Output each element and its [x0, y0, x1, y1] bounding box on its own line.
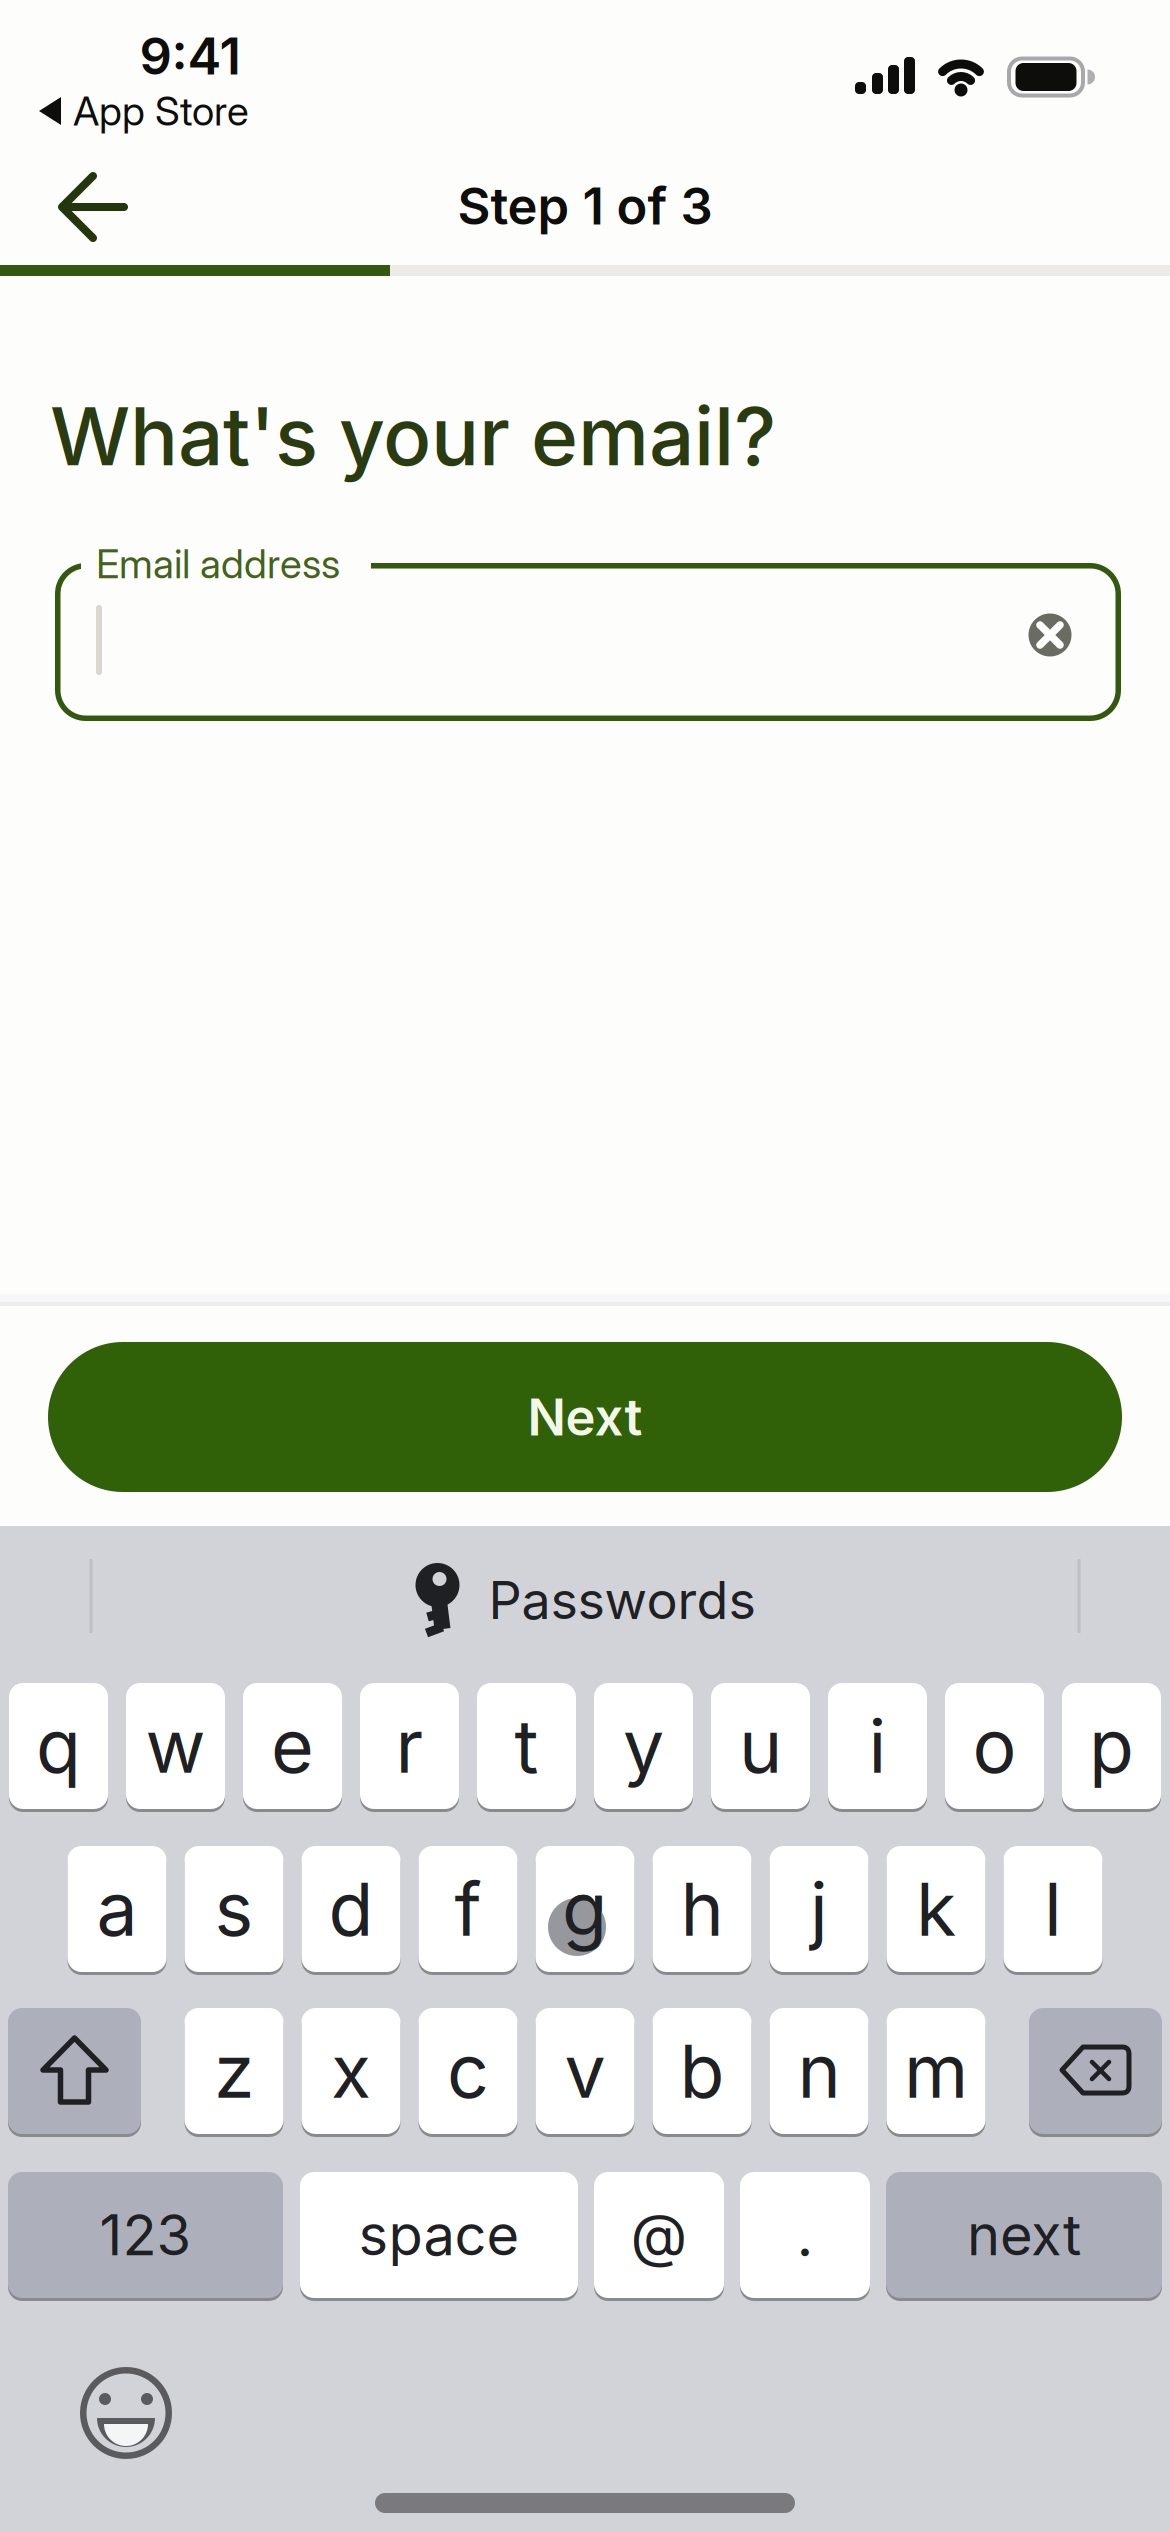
button[interactable]: o [945, 1683, 1044, 1809]
staticText: App Store [73, 87, 249, 135]
button[interactable]: x [301, 2008, 400, 2134]
button[interactable]: a [67, 1846, 166, 1972]
button[interactable]: Delete [1029, 2008, 1162, 2134]
button[interactable]: c [418, 2008, 517, 2134]
button[interactable]: 123 [8, 2172, 283, 2298]
staticText: j [810, 1866, 828, 1952]
staticText: r [395, 1703, 423, 1789]
staticText: next [967, 2202, 1081, 2268]
staticText: f [454, 1866, 481, 1952]
button[interactable]: space [300, 2172, 578, 2298]
staticText: p [1089, 1703, 1134, 1789]
button[interactable]: s [184, 1846, 283, 1972]
button[interactable]: m [886, 2008, 985, 2134]
staticText: d [328, 1866, 373, 1952]
button[interactable]: next [886, 2172, 1162, 2298]
button[interactable]: y [594, 1683, 693, 1809]
staticText: m [904, 2028, 968, 2114]
button[interactable]: q [9, 1683, 108, 1809]
staticText: What's your email? [50, 389, 776, 483]
button[interactable]: w [126, 1683, 225, 1809]
staticText: u [739, 1703, 782, 1789]
button[interactable]: p [1062, 1683, 1161, 1809]
staticText: i [868, 1703, 886, 1789]
button[interactable]: t [477, 1683, 576, 1809]
button[interactable]: Passwords [414, 1563, 755, 1637]
staticText: Passwords [488, 1569, 755, 1631]
staticText: 9:41 [139, 26, 240, 86]
staticText: b [679, 2028, 724, 2114]
staticText: Next [527, 1387, 642, 1447]
button[interactable]: . [740, 2172, 870, 2298]
button[interactable]: k [886, 1846, 985, 1972]
staticText: y [623, 1703, 664, 1789]
staticText: @ [630, 2200, 687, 2270]
staticText: space [358, 2202, 519, 2268]
staticText: k [916, 1866, 956, 1952]
button[interactable]: r [360, 1683, 459, 1809]
button[interactable]: b [652, 2008, 751, 2134]
staticText: z [214, 2028, 254, 2114]
button[interactable]: Next [48, 1342, 1122, 1492]
button[interactable]: g [535, 1846, 634, 1972]
staticText: l [1044, 1866, 1062, 1952]
button[interactable]: Shift [8, 2008, 141, 2134]
staticText: Email address [96, 540, 340, 587]
staticText: x [331, 2028, 371, 2114]
button[interactable]: h [652, 1846, 751, 1972]
staticText: q [36, 1703, 81, 1789]
staticText: h [680, 1866, 723, 1952]
staticText: s [214, 1866, 253, 1952]
button[interactable]: Back [23, 147, 163, 267]
button[interactable]: v [535, 2008, 634, 2134]
staticText: t [514, 1703, 538, 1789]
button[interactable]: d [301, 1846, 400, 1972]
button[interactable]: u [711, 1683, 810, 1809]
staticText: 123 [99, 2202, 191, 2268]
staticText: . [796, 2200, 813, 2270]
staticText: v [564, 2028, 605, 2114]
staticText: n [797, 2028, 840, 2114]
staticText: g [562, 1866, 607, 1952]
button[interactable]: l [1003, 1846, 1102, 1972]
staticText: w [145, 1703, 205, 1789]
staticText: g [562, 1866, 607, 1952]
staticText: c [447, 2028, 489, 2114]
staticText: a [96, 1866, 137, 1952]
button[interactable]: @ [594, 2172, 724, 2298]
button[interactable]: n [769, 2008, 868, 2134]
button[interactable]: Emoji [76, 2363, 176, 2463]
staticText: Step 1 of 3 [457, 176, 712, 236]
button[interactable]: i [828, 1683, 927, 1809]
button[interactable]: z [184, 2008, 283, 2134]
button[interactable]: f [418, 1846, 517, 1972]
button[interactable]: e [243, 1683, 342, 1809]
staticText: o [972, 1703, 1016, 1789]
staticText: e [271, 1703, 314, 1789]
button[interactable]: Back to App Store [37, 87, 249, 135]
button[interactable]: j [769, 1846, 868, 1972]
button[interactable]: Clear text [1022, 607, 1078, 663]
